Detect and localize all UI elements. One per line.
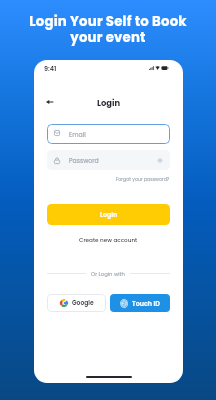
staticText: Password bbox=[69, 156, 99, 165]
button[interactable]: Email bbox=[47, 124, 170, 144]
button[interactable]: Back bbox=[43, 95, 56, 108]
button[interactable]: Password bbox=[47, 150, 170, 170]
staticText: Login bbox=[100, 210, 118, 219]
staticText: Touch ID bbox=[132, 299, 160, 308]
button[interactable]: Login bbox=[47, 204, 170, 225]
staticText: Create new account bbox=[79, 236, 138, 244]
staticText: Or Login with bbox=[91, 270, 125, 277]
button[interactable]: Touch ID bbox=[110, 294, 170, 312]
staticText: Login Your Self to Book your event bbox=[0, 12, 216, 47]
staticText: Email bbox=[69, 130, 86, 139]
button[interactable]: Create new account bbox=[47, 236, 170, 244]
staticText: Login bbox=[97, 97, 121, 109]
staticText: Google bbox=[72, 299, 94, 307]
staticText: Forgot your password? bbox=[116, 176, 170, 183]
staticText: 9:41 bbox=[44, 64, 57, 73]
button[interactable]: Forgot your password? bbox=[47, 176, 170, 183]
button[interactable]: Google bbox=[47, 294, 106, 312]
